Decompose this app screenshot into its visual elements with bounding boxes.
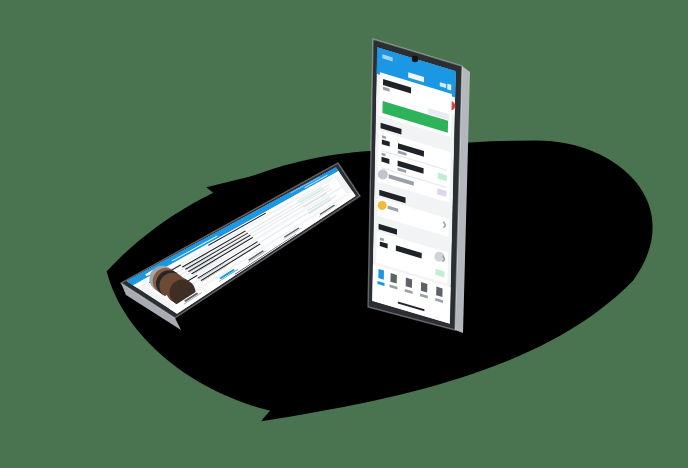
button[interactable]: Shift scheduling app shown on two phones	[0, 0, 688, 468]
